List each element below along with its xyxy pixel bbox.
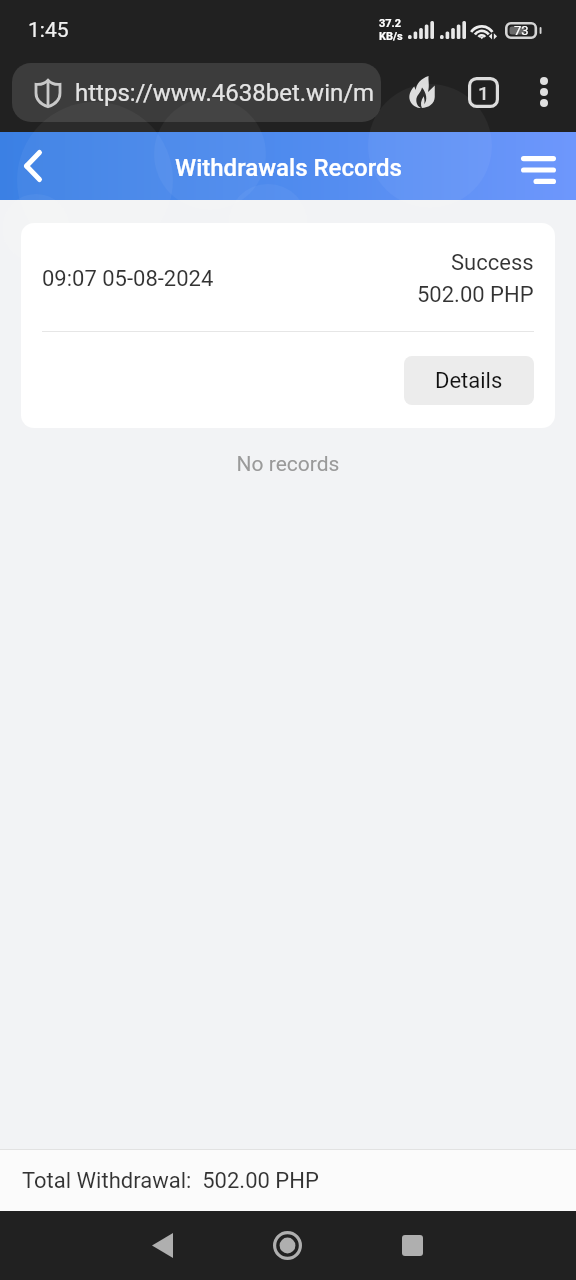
staticText: 502.00 PHP [417, 282, 534, 308]
button[interactable]: https://www.4638bet.win/m [12, 63, 381, 122]
staticText: https://www.4638bet.win/m [75, 79, 375, 107]
staticText: Success [451, 250, 534, 276]
staticText: 1 [478, 82, 489, 104]
staticText: 09:07 05-08-2024 [42, 266, 214, 292]
button[interactable]: Details [404, 356, 534, 405]
button[interactable]: Home [225, 1211, 350, 1280]
button[interactable]: More options [520, 68, 568, 116]
staticText: Total Withdrawal: 502.00 PHP [22, 1168, 319, 1194]
button[interactable]: Tabs [459, 68, 507, 116]
button[interactable]: Back [0, 132, 70, 200]
button[interactable]: Recents [350, 1211, 475, 1280]
button[interactable]: Back [100, 1211, 225, 1280]
staticText: Details [435, 368, 503, 394]
button[interactable]: Menu [500, 132, 576, 200]
staticText: KB/s [379, 30, 403, 43]
staticText: 1:45 [28, 18, 69, 43]
button[interactable]: Incognito [398, 68, 446, 116]
staticText: Withdrawals Records [175, 154, 402, 182]
staticText: 37.2 [379, 17, 402, 30]
button[interactable]: 09:07 05-08-2024 [21, 223, 555, 428]
staticText: 73 [514, 23, 529, 38]
staticText: No records [0, 452, 576, 477]
